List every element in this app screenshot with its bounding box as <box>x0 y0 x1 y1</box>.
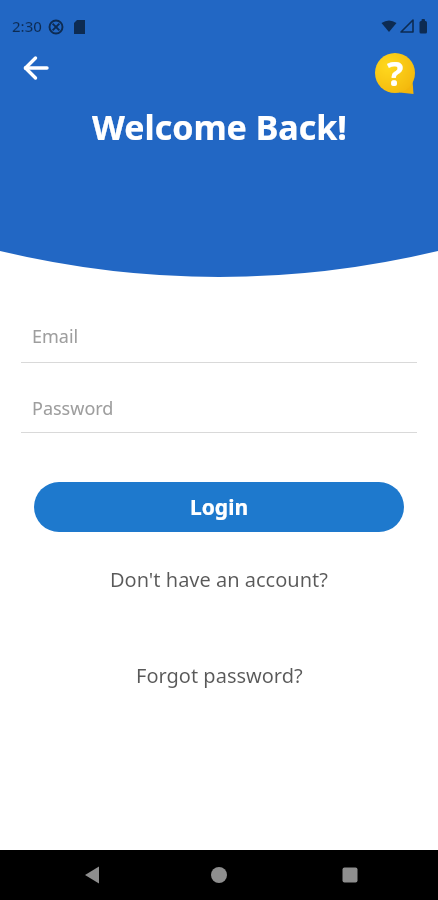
button[interactable]: Password <box>21 392 417 433</box>
staticText: 2:30 <box>12 16 42 36</box>
button[interactable]: Forgot password? <box>136 662 303 689</box>
button[interactable] <box>328 853 372 897</box>
staticText: Email <box>32 324 79 349</box>
button[interactable] <box>71 853 115 897</box>
button[interactable]: Login <box>34 482 404 532</box>
button[interactable]: ? <box>372 50 418 96</box>
button[interactable] <box>197 853 241 897</box>
staticText: Login <box>190 493 249 522</box>
staticText: Welcome Back! <box>92 104 347 150</box>
staticText: Don't have an account? <box>110 566 328 593</box>
staticText: Forgot password? <box>136 662 303 689</box>
button[interactable]: Email <box>21 320 417 363</box>
button[interactable]: Don't have an account? <box>110 566 328 593</box>
button[interactable] <box>14 47 58 91</box>
staticText: ? <box>387 50 404 96</box>
staticText: Password <box>32 396 114 421</box>
